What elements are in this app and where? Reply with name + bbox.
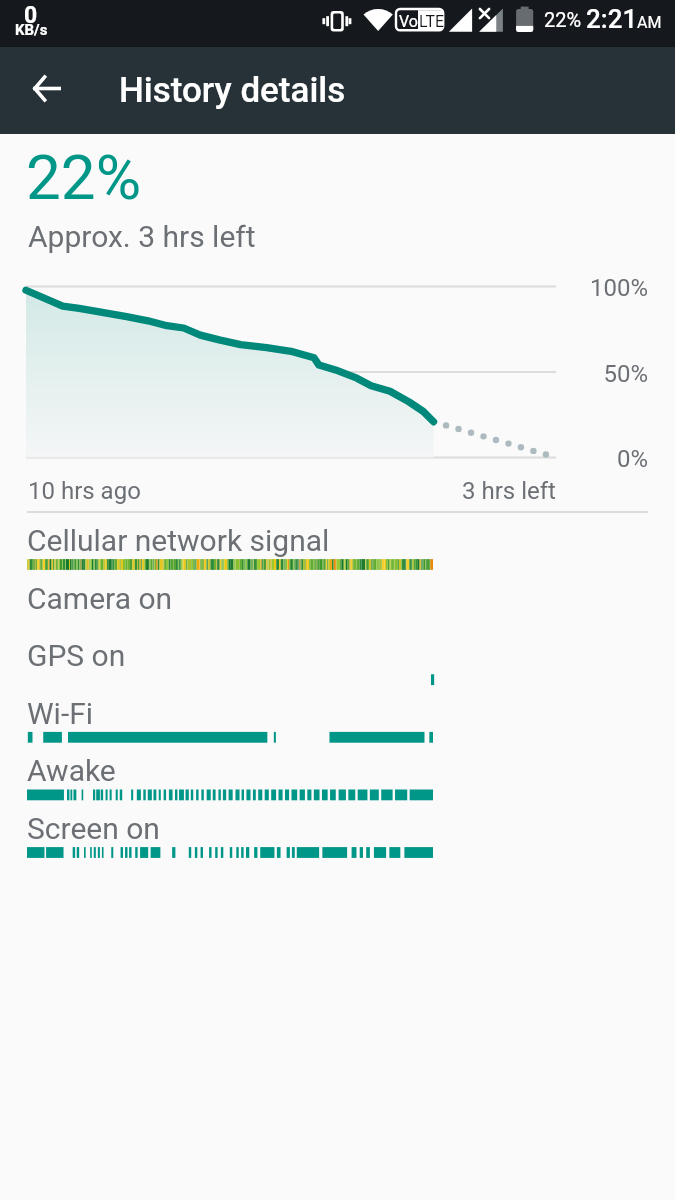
staticText: 22% (26, 141, 142, 214)
staticText: History details (119, 70, 346, 111)
button[interactable]: GPS on (0, 636, 675, 694)
staticText: 0% (548, 445, 648, 473)
staticText: 10 hrs ago (28, 477, 141, 505)
staticText: 0 (24, 2, 38, 29)
staticText: 3 hrs left (462, 477, 556, 505)
staticText: 2:21 (586, 4, 638, 34)
staticText: Vo (399, 12, 418, 31)
staticText: 50% (548, 360, 648, 388)
button[interactable]: Back (19, 63, 75, 119)
button[interactable]: 22% (0, 134, 675, 272)
staticText: GPS on (27, 638, 126, 673)
staticText: 100% (548, 274, 648, 302)
button[interactable]: Awake (0, 751, 675, 809)
staticText: Camera on (27, 581, 173, 616)
staticText: Screen on (27, 811, 160, 846)
button[interactable]: Camera on (0, 579, 675, 637)
staticText: Awake (27, 753, 116, 788)
staticText: Wi-Fi (27, 696, 94, 731)
staticText: AM (637, 13, 662, 32)
button[interactable]: Cellular network signal (0, 521, 675, 579)
staticText: LTE (419, 12, 445, 31)
staticText: 22% (544, 8, 582, 31)
staticText: Cellular network signal (27, 523, 330, 558)
staticText: KB/s (15, 21, 48, 39)
button[interactable]: Screen on (0, 809, 675, 867)
staticText: Approx. 3 hrs left (28, 219, 256, 254)
button[interactable]: Wi-Fi (0, 694, 675, 752)
